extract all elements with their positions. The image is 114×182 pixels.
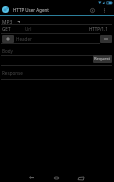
button[interactable]: Info [87,5,97,15]
button[interactable]: HTTP/1.1 [89,26,108,33]
button[interactable]: Remove header [100,35,112,43]
staticText: Response [2,70,23,76]
button[interactable]: MP3 [1,18,20,24]
button[interactable]: Request [93,55,112,63]
button[interactable]: Recents [68,169,92,182]
staticText: MP3 [2,19,13,25]
staticText: Header [16,36,32,42]
button[interactable]: Body [1,47,112,54]
staticText: HTTP/1.1 [89,26,108,32]
button[interactable]: Home [44,169,68,182]
staticText: Request [94,56,111,62]
staticText: HTTP User Agent [13,7,49,13]
staticText: GET [2,26,11,32]
button[interactable]: GET [1,26,23,33]
button[interactable]: More options [99,5,109,15]
button[interactable]: Header [15,35,98,42]
button[interactable]: Back [19,169,43,182]
staticText: Body [2,48,13,54]
button[interactable]: Url [24,26,86,33]
staticText: Url [25,26,32,32]
button[interactable]: Add header [2,35,14,43]
